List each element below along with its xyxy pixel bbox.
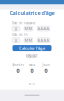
- staticText: v1.0: [29, 82, 35, 86]
- staticText: Calculatrice d'âge: [9, 9, 54, 17]
- staticText: 0: [30, 67, 33, 74]
- button[interactable]: JJ: [12, 38, 20, 43]
- staticText: Jours: [42, 63, 49, 67]
- button[interactable]: JJ: [12, 26, 20, 31]
- staticText: 0: [16, 67, 19, 74]
- staticText: Date de naissance: [12, 21, 36, 25]
- staticText: RÉSULTAT: [26, 55, 38, 58]
- staticText: Date de fin: [12, 33, 28, 36]
- button[interactable]: MM: [24, 38, 33, 43]
- staticText: AAAA: [37, 37, 49, 43]
- button[interactable]: AAAA: [37, 26, 50, 31]
- button[interactable]: Calculer l'âge: [12, 45, 51, 51]
- button[interactable]: MM: [24, 26, 33, 31]
- button[interactable]: AAAA: [37, 38, 50, 43]
- staticText: JJ: [15, 37, 17, 43]
- staticText: Années: [12, 63, 23, 67]
- staticText: 0: [44, 67, 47, 74]
- staticText: Mois: [29, 63, 35, 67]
- staticText: MM: [24, 37, 32, 43]
- staticText: Calculer l'âge: [19, 45, 45, 51]
- staticText: AAAA: [37, 26, 49, 31]
- staticText: JJ: [15, 26, 17, 31]
- staticText: MM: [24, 26, 32, 31]
